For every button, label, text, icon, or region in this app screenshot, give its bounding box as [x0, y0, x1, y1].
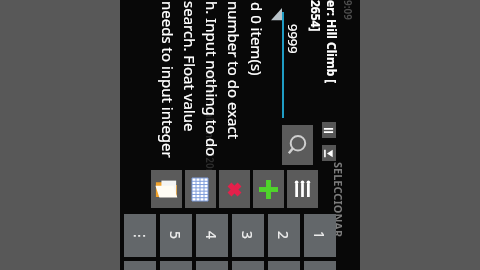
button[interactable]: 2: [268, 214, 300, 257]
button[interactable]: Markers: [287, 170, 318, 208]
button[interactable]: Table: [185, 170, 216, 208]
button[interactable]: Delete: [219, 170, 250, 208]
button[interactable]: Open file: [151, 170, 182, 208]
button[interactable]: ⋮: [124, 214, 156, 257]
staticText: SELECCIONAR: [331, 162, 346, 238]
button[interactable]: Search: [282, 125, 313, 165]
button[interactable]: Menu: [322, 122, 336, 138]
staticText: Nivel 5: alcanza 120m: [203, 72, 217, 179]
button[interactable]: 1: [304, 214, 336, 257]
button[interactable]: Add: [253, 170, 284, 208]
staticText: ⋮: [132, 229, 148, 243]
staticText: 5: [166, 231, 185, 240]
button[interactable]: 5: [160, 214, 192, 257]
staticText: 9999: [284, 24, 302, 54]
staticText: 1: [310, 231, 329, 240]
staticText: 9:09: [341, 0, 355, 20]
button[interactable]: 4: [196, 214, 228, 257]
staticText: d 0 item(s): [247, 2, 267, 76]
staticText: 3: [238, 231, 257, 240]
staticText: 4: [202, 231, 221, 240]
button[interactable]: Previous: [322, 145, 336, 161]
staticText: er: Hill Climb [ 2654]: [308, 0, 340, 84]
staticText: 2: [274, 231, 293, 240]
staticText: number to do exact h. Input nothing to d…: [157, 1, 244, 158]
button[interactable]: 3: [232, 214, 264, 257]
